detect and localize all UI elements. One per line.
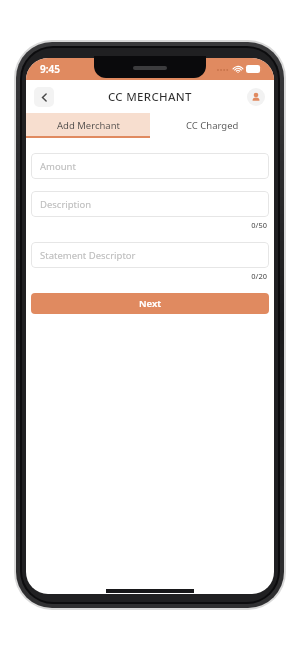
staticText: Add Merchant [57,119,120,132]
staticText: CC Charged [186,119,239,132]
button[interactable]: Description [31,191,269,217]
button[interactable]: Statement Descriptor [31,242,269,268]
button[interactable]: CC Charged [150,113,274,138]
staticText: Statement Descriptor [40,249,136,262]
staticText: 9:45 [40,62,60,76]
staticText: 0/20 [251,271,267,281]
staticText: 0/50 [251,220,267,230]
button[interactable]: Add Merchant [26,113,150,138]
staticText: Next [139,297,162,310]
staticText: Amount [40,160,76,173]
staticText: Description [40,198,92,211]
button[interactable]: Amount [31,153,269,179]
button[interactable]: Profile [247,88,265,106]
button[interactable]: Next [31,293,269,314]
staticText: CC MERCHANT [108,89,192,105]
button[interactable]: Back [34,87,54,107]
